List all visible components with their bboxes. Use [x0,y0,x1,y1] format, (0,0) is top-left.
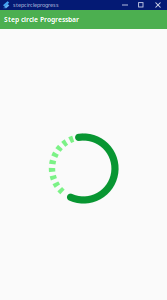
button[interactable]: Close [149,0,167,10]
button[interactable]: Minimise [117,0,133,10]
button[interactable]: Maximise [133,0,149,10]
staticText: stepcircleprogress [13,1,59,9]
staticText: Step circle Progressbar [4,15,79,24]
